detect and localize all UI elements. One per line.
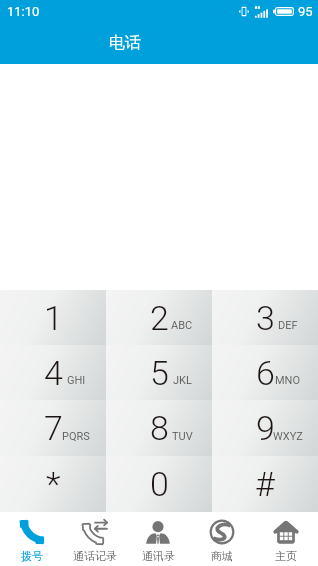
button[interactable]: 9 xyxy=(212,400,318,456)
staticText: WXYZ xyxy=(273,430,303,443)
button[interactable]: Contacts xyxy=(126,512,190,566)
staticText: # xyxy=(255,464,275,504)
staticText: ABC xyxy=(171,319,193,332)
button[interactable]: Home xyxy=(254,512,318,566)
staticText: 4 xyxy=(44,353,63,393)
staticText: 5 xyxy=(150,353,169,393)
button[interactable]: 8 xyxy=(106,400,212,456)
staticText: MNO xyxy=(275,374,301,387)
staticText: 通话记录 xyxy=(73,549,117,563)
button[interactable]: 5 xyxy=(106,345,212,400)
staticText: 95 xyxy=(298,4,313,19)
staticText: 9 xyxy=(256,408,275,448)
button[interactable]: Store xyxy=(190,512,254,566)
staticText: 8 xyxy=(150,408,169,448)
button[interactable]: * xyxy=(0,456,106,512)
button[interactable]: Call log xyxy=(63,512,126,566)
staticText: 商城 xyxy=(211,549,233,563)
button[interactable]: 4 xyxy=(0,345,106,400)
staticText: 7 xyxy=(44,408,63,448)
staticText: 主页 xyxy=(275,549,297,563)
button[interactable]: 0 xyxy=(106,456,212,512)
button[interactable]: Dial xyxy=(0,512,63,566)
button[interactable]: 7 xyxy=(0,400,106,456)
button[interactable]: 2 xyxy=(106,290,212,345)
staticText: PQRS xyxy=(62,430,90,443)
button[interactable]: 1 xyxy=(0,290,106,345)
staticText: DEF xyxy=(278,319,298,332)
button[interactable]: 6 xyxy=(212,345,318,400)
staticText: 通讯录 xyxy=(142,549,175,563)
staticText: JKL xyxy=(173,374,192,387)
staticText: 6 xyxy=(256,353,275,393)
staticText: 11:10 xyxy=(7,4,40,19)
staticText: 拨号 xyxy=(21,549,43,563)
staticText: 2 xyxy=(150,298,169,338)
staticText: 1 xyxy=(44,298,63,338)
staticText: GHI xyxy=(67,374,86,387)
staticText: 3 xyxy=(256,298,275,338)
staticText: * xyxy=(46,464,61,504)
button[interactable]: 3 xyxy=(212,290,318,345)
button[interactable]: # xyxy=(212,456,318,512)
staticText: 0 xyxy=(150,464,169,504)
staticText: 电话 xyxy=(109,33,141,53)
staticText: TUV xyxy=(172,430,193,443)
